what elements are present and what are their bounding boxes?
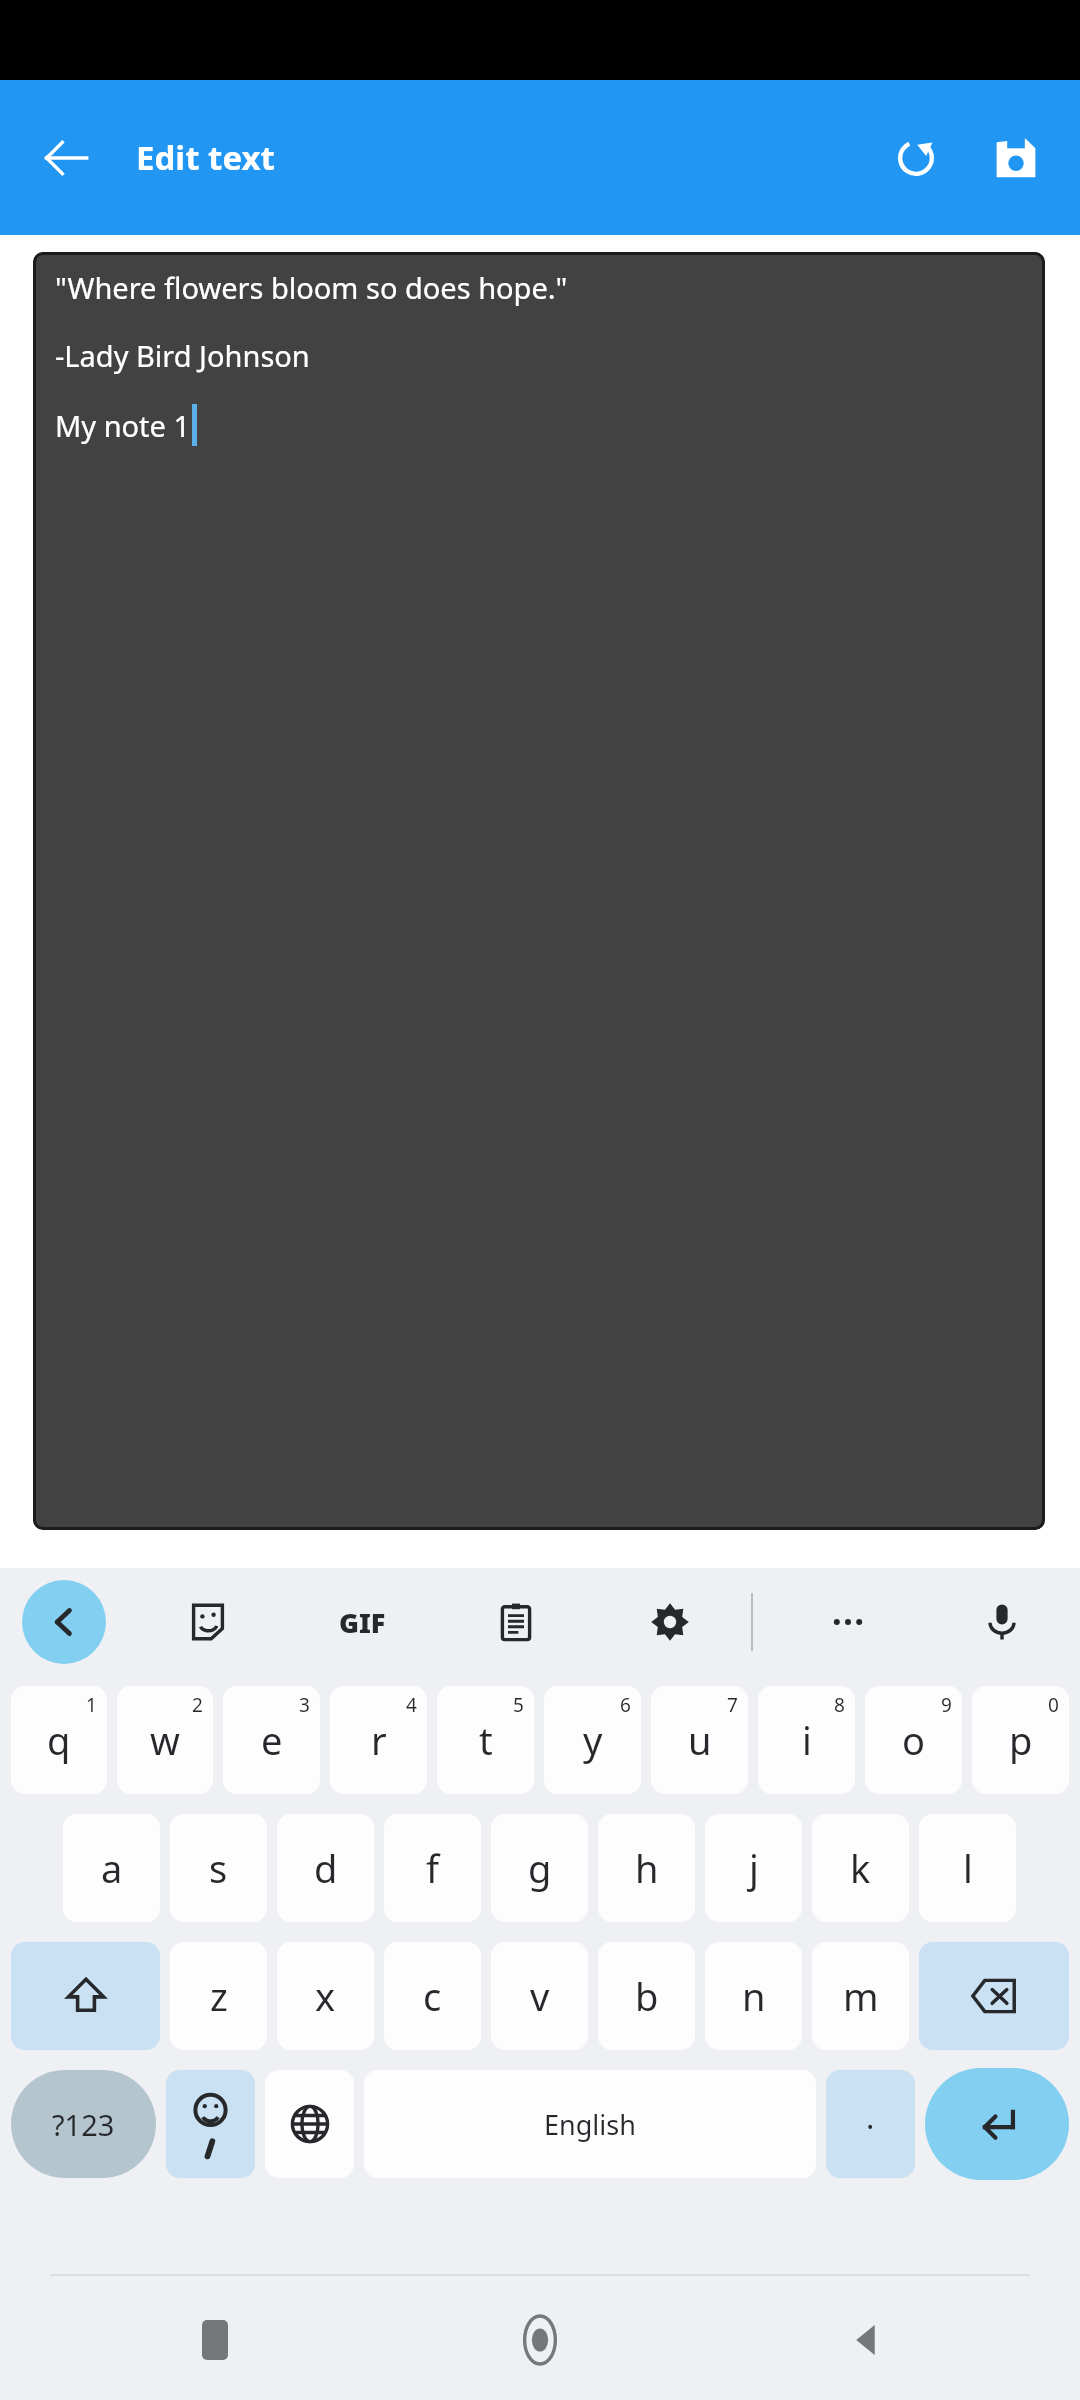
button[interactable]: Shift bbox=[11, 1942, 160, 2050]
button[interactable]: o bbox=[865, 1686, 962, 1794]
staticText: i bbox=[802, 1714, 812, 1766]
staticText: 3 bbox=[299, 1692, 310, 1718]
button[interactable]: Voice input bbox=[960, 1580, 1044, 1664]
staticText: d bbox=[314, 1842, 338, 1894]
staticText: English bbox=[544, 2106, 636, 2143]
staticText: 4 bbox=[406, 1692, 417, 1718]
staticText: Edit text bbox=[136, 135, 275, 180]
button[interactable]: GIF bbox=[320, 1580, 404, 1664]
button[interactable]: Stickers bbox=[166, 1580, 250, 1664]
staticText: t bbox=[479, 1714, 493, 1766]
staticText: c bbox=[423, 1970, 442, 2022]
button[interactable]: w bbox=[117, 1686, 213, 1794]
button[interactable]: c bbox=[384, 1942, 481, 2050]
staticText: r bbox=[371, 1714, 387, 1766]
button[interactable]: Home bbox=[485, 2285, 595, 2395]
staticText: v bbox=[530, 1970, 550, 2022]
staticText: 0 bbox=[1048, 1692, 1059, 1718]
button[interactable]: j bbox=[705, 1814, 802, 1922]
staticText: f bbox=[426, 1842, 440, 1894]
staticText: ?123 bbox=[52, 2105, 115, 2144]
staticText: p bbox=[1009, 1714, 1033, 1766]
button[interactable]: l bbox=[919, 1814, 1016, 1922]
button[interactable]: k bbox=[812, 1814, 909, 1922]
button[interactable]: Change language bbox=[265, 2070, 354, 2178]
staticText: m bbox=[843, 1970, 879, 2022]
button[interactable]: i bbox=[758, 1686, 855, 1794]
button[interactable]: y bbox=[544, 1686, 641, 1794]
button[interactable]: Clipboard bbox=[474, 1580, 558, 1664]
staticText: 7 bbox=[727, 1692, 738, 1718]
staticText: o bbox=[902, 1714, 925, 1766]
staticText: x bbox=[315, 1970, 336, 2022]
button[interactable]: Recent apps bbox=[160, 2285, 270, 2395]
staticText: . bbox=[866, 2096, 875, 2138]
button[interactable]: r bbox=[330, 1686, 427, 1794]
staticText: 6 bbox=[620, 1692, 631, 1718]
button[interactable]: u bbox=[651, 1686, 748, 1794]
button[interactable]: p bbox=[972, 1686, 1069, 1794]
button[interactable]: More options bbox=[806, 1580, 890, 1664]
button[interactable]: Emoji bbox=[166, 2070, 255, 2178]
staticText: g bbox=[528, 1842, 552, 1894]
button[interactable]: g bbox=[491, 1814, 588, 1922]
button[interactable]: m bbox=[812, 1942, 909, 2050]
staticText: s bbox=[209, 1842, 228, 1894]
staticText: 5 bbox=[513, 1692, 524, 1718]
staticText: 1 bbox=[86, 1692, 97, 1718]
staticText: 9 bbox=[941, 1692, 952, 1718]
button[interactable]: . bbox=[826, 2070, 915, 2178]
staticText: n bbox=[742, 1970, 766, 2022]
staticText: u bbox=[688, 1714, 712, 1766]
staticText: b bbox=[635, 1970, 659, 2022]
button[interactable]: Save bbox=[966, 108, 1066, 208]
button[interactable]: ?123 bbox=[11, 2070, 156, 2178]
staticText: a bbox=[101, 1842, 123, 1894]
button[interactable]: b bbox=[598, 1942, 695, 2050]
button[interactable]: e bbox=[223, 1686, 320, 1794]
staticText: z bbox=[210, 1970, 228, 2022]
button[interactable]: f bbox=[384, 1814, 481, 1922]
staticText: h bbox=[635, 1842, 659, 1894]
staticText: l bbox=[963, 1842, 973, 1894]
staticText: q bbox=[47, 1714, 71, 1766]
button[interactable]: Enter bbox=[925, 2068, 1069, 2180]
button[interactable]: Refresh bbox=[866, 108, 966, 208]
staticText: "Where flowers bloom so does hope." bbox=[55, 268, 568, 307]
staticText: 2 bbox=[192, 1692, 203, 1718]
button[interactable]: Settings bbox=[628, 1580, 712, 1664]
staticText: -Lady Bird Johnson bbox=[55, 336, 310, 375]
staticText: GIF bbox=[339, 1604, 386, 1641]
button[interactable]: Backspace bbox=[919, 1942, 1069, 2050]
button[interactable]: Navigate up bbox=[18, 110, 114, 206]
button[interactable]: a bbox=[63, 1814, 160, 1922]
button[interactable]: q bbox=[11, 1686, 107, 1794]
staticText: e bbox=[261, 1714, 283, 1766]
button[interactable]: English bbox=[364, 2070, 816, 2178]
staticText: k bbox=[850, 1842, 871, 1894]
button[interactable]: t bbox=[437, 1686, 534, 1794]
staticText: y bbox=[583, 1714, 603, 1766]
button[interactable]: z bbox=[170, 1942, 267, 2050]
button[interactable]: s bbox=[170, 1814, 267, 1922]
button[interactable]: x bbox=[277, 1942, 374, 2050]
button[interactable]: n bbox=[705, 1942, 802, 2050]
button[interactable]: Back to keyboard bbox=[22, 1580, 106, 1664]
button[interactable]: h bbox=[598, 1814, 695, 1922]
button[interactable]: Back bbox=[810, 2285, 920, 2395]
staticText: j bbox=[749, 1842, 759, 1894]
button[interactable]: d bbox=[277, 1814, 374, 1922]
button[interactable]: v bbox=[491, 1942, 588, 2050]
button[interactable]: "Where flowers bloom so does hope." bbox=[33, 252, 1045, 1530]
staticText: My note 1 bbox=[55, 406, 191, 445]
staticText: w bbox=[150, 1714, 180, 1766]
staticText: 8 bbox=[834, 1692, 845, 1718]
